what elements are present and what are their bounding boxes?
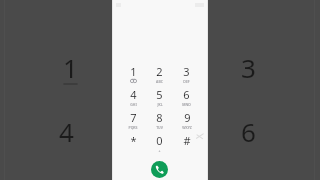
staticText: 3 <box>183 64 190 79</box>
staticText: 5 <box>156 87 163 102</box>
staticText: GHI <box>130 102 137 107</box>
staticText: 8 <box>156 110 163 125</box>
staticText: 1 <box>130 64 137 79</box>
staticText: 4 <box>59 114 74 148</box>
staticText: DEF <box>183 79 190 84</box>
staticText: WXYZ <box>182 125 192 130</box>
button[interactable]: # <box>173 133 200 156</box>
staticText: PQRS <box>128 125 138 130</box>
button[interactable]: 0 <box>146 133 173 156</box>
button[interactable]: Call <box>151 161 168 178</box>
button[interactable]: 6 <box>234 114 262 148</box>
staticText: 7 <box>130 110 137 125</box>
button[interactable]: 1 <box>56 50 84 84</box>
button[interactable]: 5 <box>146 87 173 110</box>
button[interactable]: * <box>120 133 146 156</box>
staticText: 6 <box>183 87 190 102</box>
staticText: * <box>130 133 137 148</box>
staticText: 0 <box>156 133 163 148</box>
staticText: # <box>183 133 191 148</box>
button[interactable]: 7 <box>120 110 146 133</box>
button[interactable]: 3 <box>234 50 262 84</box>
staticText: 1 <box>63 50 78 84</box>
button[interactable]: 4 <box>120 87 146 110</box>
staticText: ABC <box>156 79 163 84</box>
staticText: TUV <box>156 125 163 130</box>
staticText: 3 <box>241 50 256 84</box>
button[interactable]: 8 <box>146 110 173 133</box>
button[interactable]: Dialpad options <box>194 131 206 143</box>
button[interactable]: 6 <box>173 87 200 110</box>
button[interactable]: 2 <box>146 64 173 87</box>
button[interactable]: 3 <box>173 64 200 87</box>
staticText: 9 <box>184 110 191 125</box>
button[interactable]: 1 <box>120 64 146 87</box>
staticText: 4 <box>130 87 137 102</box>
staticText: MNO <box>182 102 191 107</box>
button[interactable]: 4 <box>52 114 80 148</box>
button[interactable]: 9 <box>173 110 200 133</box>
staticText: JKL <box>157 102 163 107</box>
staticText: 2 <box>156 64 163 79</box>
staticText: + <box>158 148 161 153</box>
staticText: 6 <box>241 114 256 148</box>
